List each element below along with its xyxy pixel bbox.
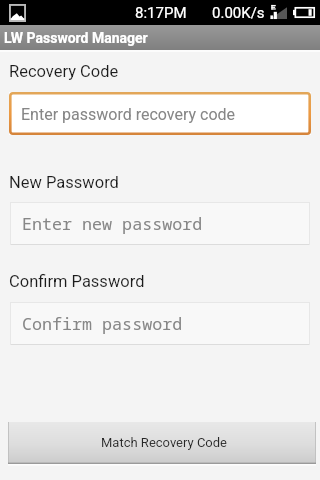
button[interactable]: Confirm password (10, 302, 310, 345)
staticText: New Password (9, 173, 119, 192)
staticText: 0.00K/s (212, 4, 265, 22)
other: Battery (293, 7, 315, 18)
staticText: Recovery Code (9, 62, 119, 81)
staticText: Match Recovery Code (101, 435, 227, 450)
staticText: Confirm Password (9, 272, 145, 291)
button[interactable]: Enter new password (10, 202, 310, 245)
button[interactable]: Match Recovery Code (8, 422, 316, 465)
other: Screenshot saved (9, 4, 26, 22)
staticText: LW Password Manager (4, 30, 148, 46)
staticText: Enter new password (22, 212, 203, 235)
other: Signal strength (268, 4, 287, 21)
staticText: 8:17PM (135, 4, 187, 22)
staticText: Enter password recovery code (21, 105, 236, 124)
button[interactable]: Enter password recovery code (9, 92, 311, 135)
staticText: Confirm password (22, 312, 183, 335)
